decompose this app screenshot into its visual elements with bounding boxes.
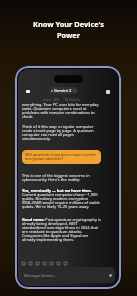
button[interactable]: Copy <box>22 260 29 267</box>
staticText: more 30% 18.4 kbit/s <box>22 98 101 102</box>
staticText: Think of it this way: a regular computer… <box>22 124 101 142</box>
button[interactable]: Gemini 2 <box>49 87 78 94</box>
button[interactable]: Account <box>102 86 114 98</box>
button[interactable]: More <box>57 260 64 267</box>
button[interactable]: Like <box>29 260 36 267</box>
button[interactable]: Will quantum computers make current encr… <box>22 150 101 164</box>
staticText: Good news: Post-quantum cryptography is … <box>22 217 101 243</box>
button[interactable]: Edit <box>64 260 71 267</box>
staticText: Gemini 2 <box>54 88 72 94</box>
button[interactable]: Refresh <box>50 260 57 267</box>
button[interactable]: Message Gemini... <box>21 267 115 283</box>
staticText: Message Gemini... <box>24 273 57 278</box>
staticText: Will quantum computers make current encr… <box>25 152 98 162</box>
staticText: Yes, eventually — but we have time. Curr… <box>22 188 101 210</box>
button[interactable]: Voice input <box>108 273 112 277</box>
staticText: everything. Your PC uses bits for everyd… <box>22 102 101 120</box>
staticText: Know Your Device's Power <box>0 19 137 41</box>
button[interactable]: Menu <box>22 86 34 97</box>
staticText: This is one of the biggest concerns in c… <box>22 173 101 183</box>
button[interactable]: Share <box>43 260 50 267</box>
button[interactable]: Dislike <box>36 260 43 267</box>
